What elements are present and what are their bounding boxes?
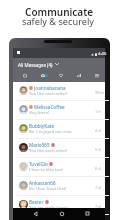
button[interactable]: Back bbox=[33, 211, 38, 216]
staticText: You like each other! bbox=[29, 148, 85, 154]
staticText: I love to hike too! bbox=[29, 167, 85, 173]
button[interactable]: TuvelGlo bbox=[13, 158, 105, 177]
staticText: Bexter bbox=[29, 199, 44, 205]
staticText: 6 d bbox=[95, 166, 101, 171]
staticText: 39 m bbox=[95, 90, 104, 95]
button[interactable]: Messages bbox=[37, 69, 49, 82]
staticText: You are really lovely bbox=[29, 205, 85, 211]
button[interactable]: Change filter bbox=[54, 61, 60, 67]
staticText: TuvelGlo bbox=[29, 161, 48, 167]
staticText: MelissaCoffee bbox=[34, 104, 65, 110]
staticText: safely & securely bbox=[22, 15, 94, 28]
staticText: 4:46 bbox=[98, 51, 107, 57]
button[interactable]: Home bbox=[19, 69, 31, 82]
staticText: Hey there! bbox=[29, 110, 85, 116]
button[interactable]: BubblyKate bbox=[13, 120, 105, 139]
staticText: 7 d bbox=[95, 185, 101, 190]
button[interactable]: Bexter bbox=[13, 196, 105, 215]
staticText: All Messages (4) bbox=[18, 62, 53, 68]
staticText: Communicate bbox=[25, 5, 94, 19]
staticText: Re: I enjoyed our chat bbox=[29, 129, 85, 135]
button[interactable]: MelissaCoffee bbox=[13, 101, 105, 120]
staticText: 4 d bbox=[95, 128, 101, 133]
button[interactable]: Menu bbox=[91, 69, 103, 82]
button[interactable]: Popularity bbox=[73, 69, 85, 82]
staticText: 1 h bbox=[95, 109, 101, 114]
button[interactable]: Recent apps bbox=[85, 211, 90, 216]
button[interactable]: Joannabanana bbox=[13, 82, 105, 101]
staticText: Joannabanana bbox=[34, 85, 66, 91]
button[interactable]: Likes bbox=[55, 69, 67, 82]
button[interactable]: Home bbox=[59, 211, 64, 216]
staticText: BubblyKate bbox=[29, 123, 55, 129]
button[interactable]: Marie565 bbox=[13, 139, 105, 158]
staticText: 5 d bbox=[95, 147, 101, 152]
button[interactable]: Ankassari66 bbox=[13, 177, 105, 196]
staticText: Marie565 bbox=[29, 142, 50, 148]
staticText: Re: How 'bout that! bbox=[29, 186, 85, 192]
staticText: 7 d bbox=[95, 204, 101, 209]
staticText: You like each other! bbox=[29, 91, 85, 97]
staticText: Ankassari66 bbox=[29, 180, 56, 186]
